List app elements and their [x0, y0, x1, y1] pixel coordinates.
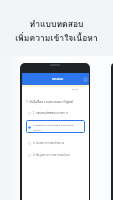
button[interactable]: 2. General Name Digital Commerce (GNDC) [26, 120, 85, 133]
staticText: 1. ผลิตภัณฑ์ดิจิทัลและบริการ [33, 111, 69, 115]
button[interactable]: 4. ข้อมูลทางการตลาดออนไลน์ [26, 149, 85, 160]
button[interactable]: 3. ช่องทางการจัดจำหน่าย [26, 137, 85, 148]
staticText: 1. ข้อใดคือความหมายของ Digital [26, 99, 74, 104]
staticText: ทดสอบ [52, 76, 64, 82]
staticText: 2. General Name Digital Commerce (GNDC) [33, 123, 74, 131]
button[interactable]: Help [83, 77, 87, 81]
staticText: เพิ่มความเข้าใจเนื้อหา [15, 31, 98, 45]
staticText: ทำแบบทดสอบ [29, 17, 84, 31]
staticText: 4. ข้อมูลทางการตลาดออนไลน์ [33, 153, 70, 157]
staticText: 3. ช่องทางการจัดจำหน่าย [33, 141, 65, 145]
staticText: 00:30 [72, 87, 79, 90]
button[interactable]: 1. ผลิตภัณฑ์ดิจิทัลและบริการ [26, 107, 85, 118]
